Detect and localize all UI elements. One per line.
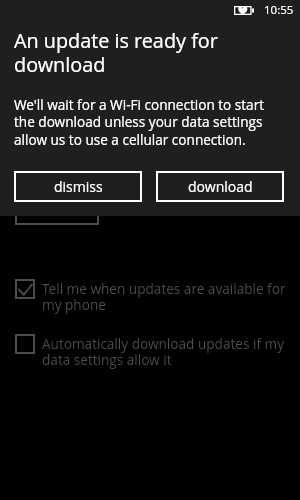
staticText: Automatically download updates if my dat… xyxy=(42,334,288,369)
button[interactable]: check for updates xyxy=(15,196,99,225)
button[interactable]: Automatically download updates if my dat… xyxy=(15,333,288,368)
staticText: dismiss xyxy=(54,177,103,196)
staticText: We'll wait for a Wi-Fi connection to sta… xyxy=(14,95,285,149)
staticText: Tell me when updates are available for m… xyxy=(42,279,288,314)
staticText: download xyxy=(188,177,253,196)
button[interactable]: dismiss xyxy=(14,171,142,202)
staticText: An update is ready for download xyxy=(14,27,285,78)
staticText: 10:55 xyxy=(264,2,294,18)
button[interactable]: Tell me when updates are available for m… xyxy=(15,278,288,313)
button[interactable]: download xyxy=(156,171,284,202)
other: Battery saver xyxy=(234,6,254,15)
